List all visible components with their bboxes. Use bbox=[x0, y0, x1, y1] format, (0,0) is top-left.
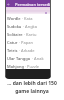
staticText: Catur bbox=[7, 40, 18, 45]
staticText: Sudoku bbox=[7, 24, 22, 29]
button[interactable]: Tetris bbox=[5, 46, 51, 54]
button[interactable]: Wordle bbox=[5, 14, 51, 22]
staticText: · Puzzle bbox=[25, 64, 40, 69]
staticText: · Papan bbox=[19, 40, 33, 45]
button[interactable]: Catur bbox=[5, 38, 51, 46]
button[interactable]: Mahjong bbox=[5, 62, 51, 70]
staticText: · Anak bbox=[32, 56, 44, 61]
staticText: ... dan lebih dari 150 bbox=[7, 80, 57, 87]
staticText: · Arkade bbox=[19, 48, 35, 53]
staticText: Permainan tersedia bbox=[15, 2, 51, 7]
button[interactable]: Solitaire bbox=[5, 30, 51, 38]
button[interactable]: Back bbox=[6, 2, 10, 6]
staticText: Mahjong bbox=[7, 64, 24, 69]
staticText: Wordle bbox=[7, 16, 21, 21]
button[interactable]: Sudoku bbox=[5, 22, 51, 30]
button[interactable]: Search bbox=[46, 2, 50, 6]
staticText: Ular Tangga bbox=[7, 56, 31, 61]
button[interactable]: Ular Tangga bbox=[5, 54, 51, 62]
staticText: · Kartu bbox=[24, 32, 37, 37]
staticText: · Kata bbox=[22, 16, 33, 21]
staticText: game lainnya bbox=[15, 88, 49, 95]
staticText: Tetris bbox=[7, 48, 18, 53]
staticText: Solitaire bbox=[7, 32, 23, 37]
staticText: · Angka bbox=[23, 24, 37, 29]
